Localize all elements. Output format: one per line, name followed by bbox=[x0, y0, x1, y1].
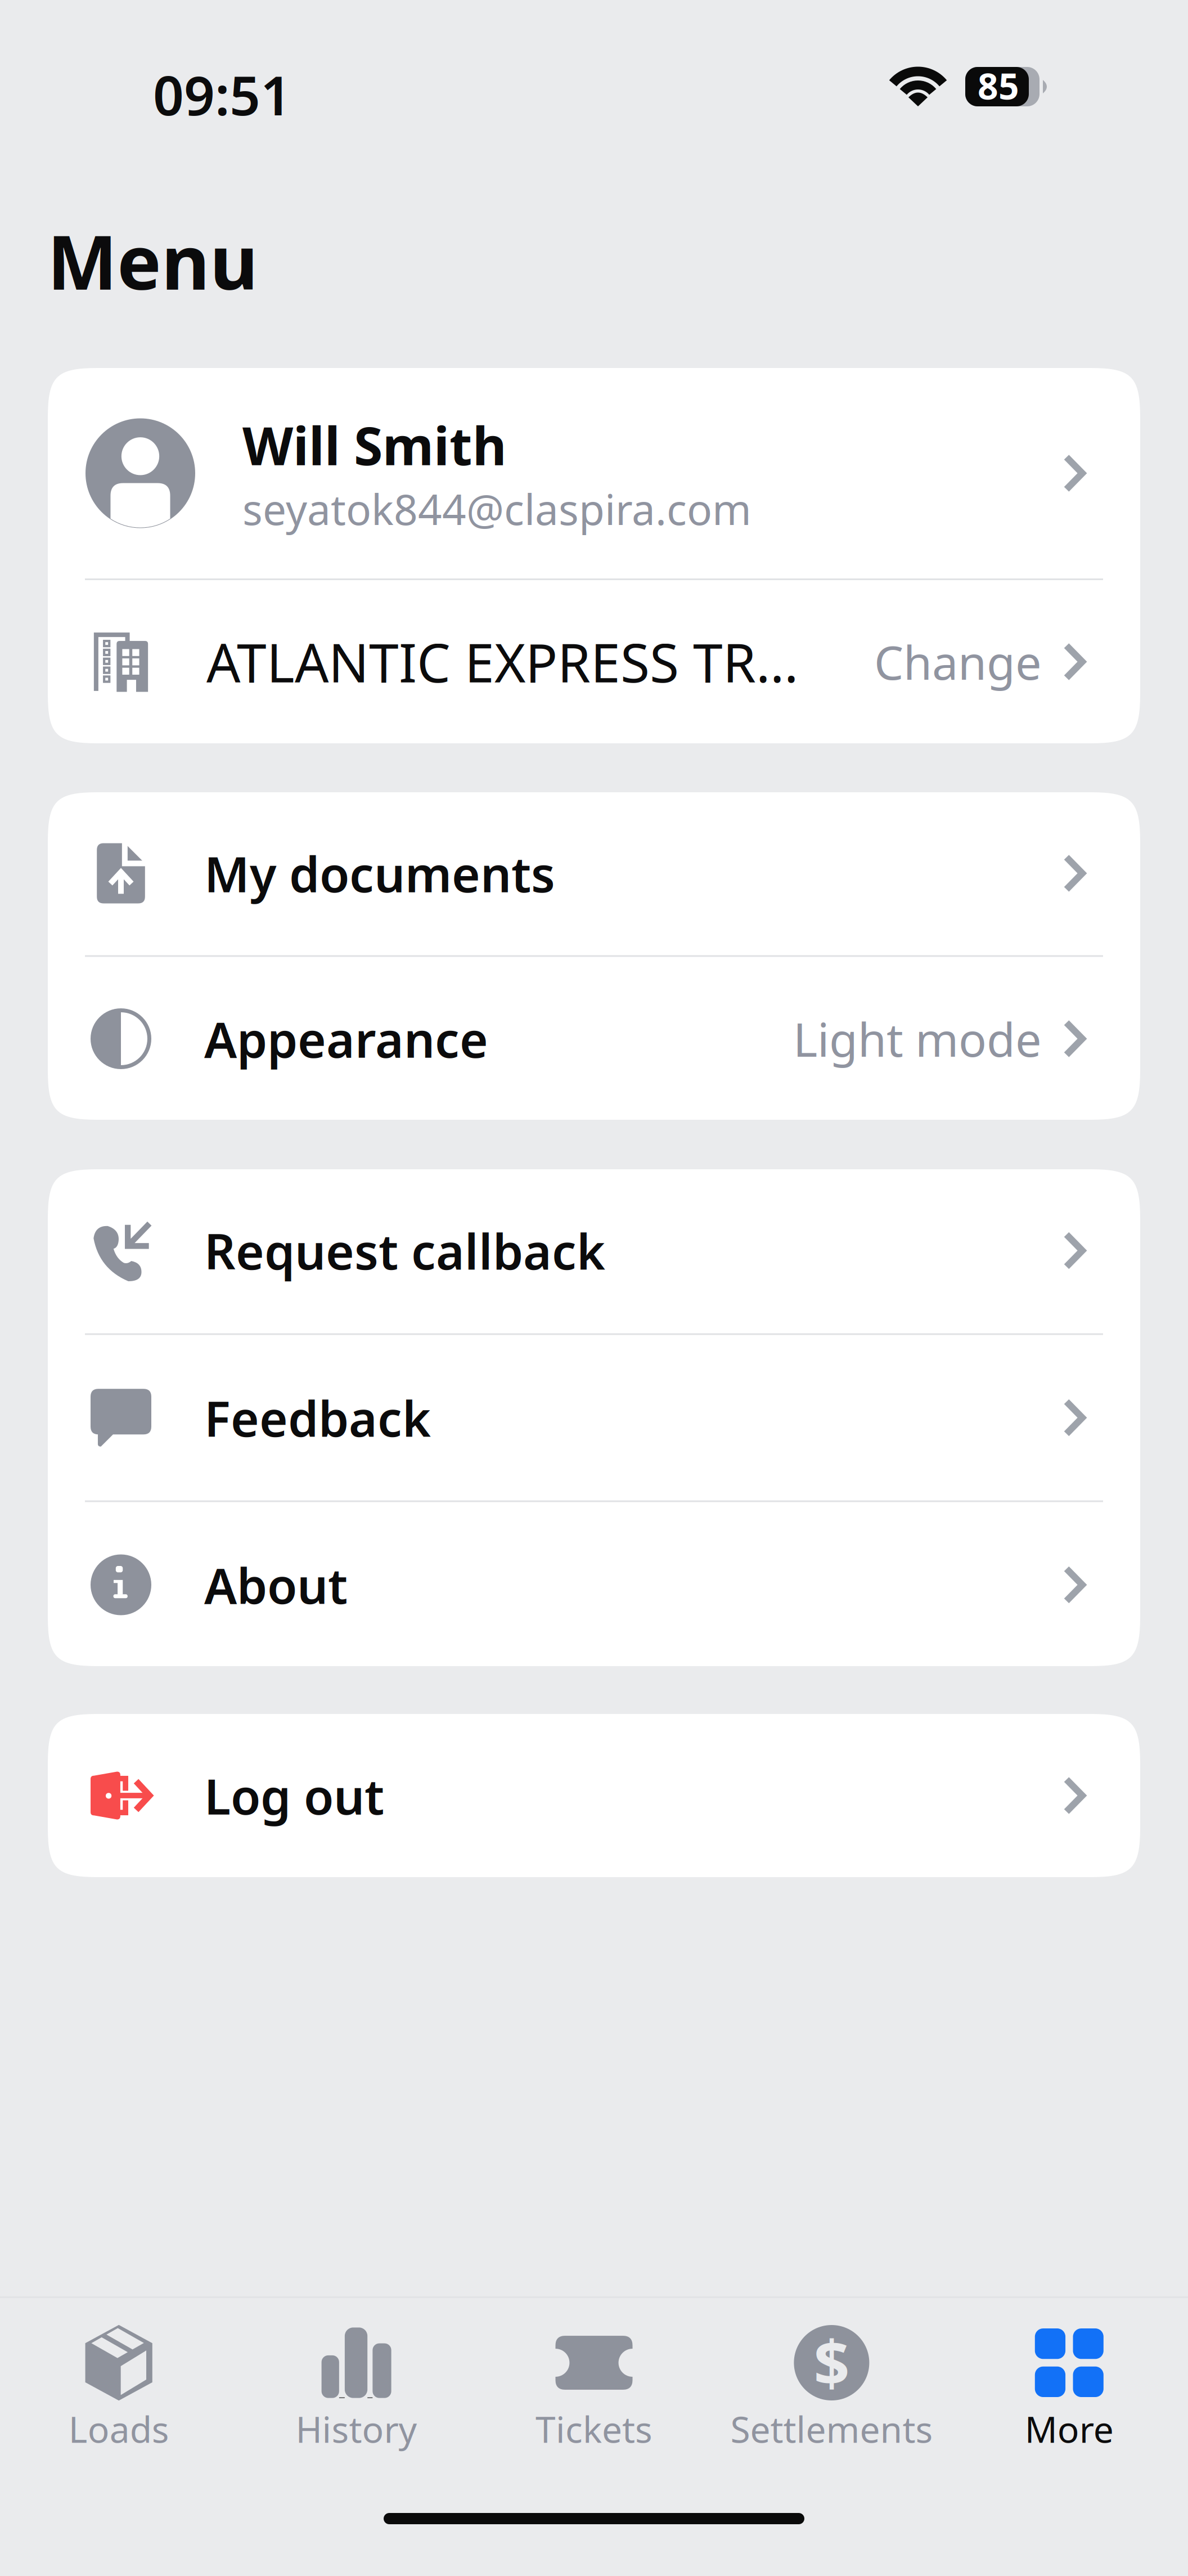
staticText: Request callback bbox=[204, 1218, 605, 1283]
staticText: Tickets bbox=[535, 2405, 652, 2453]
staticText: 85 bbox=[978, 62, 1019, 109]
staticText: 09:51 bbox=[153, 59, 291, 130]
staticText: seyatok844@claspira.com bbox=[242, 481, 751, 537]
staticText: Appearance bbox=[204, 1006, 488, 1071]
staticText: Settlements bbox=[730, 2405, 933, 2453]
staticText: More bbox=[1025, 2405, 1114, 2453]
button[interactable]: Feedback bbox=[48, 1335, 1140, 1500]
staticText: Menu bbox=[47, 212, 258, 310]
button[interactable]: More bbox=[950, 2298, 1188, 2467]
button[interactable]: ATLANTIC EXPRESS TR... bbox=[48, 580, 1140, 743]
staticText: Will Smith bbox=[242, 410, 507, 480]
button[interactable]: Tickets bbox=[475, 2298, 713, 2467]
button[interactable]: Log out bbox=[48, 1714, 1140, 1877]
staticText: ATLANTIC EXPRESS TR... bbox=[206, 626, 798, 697]
staticText: Feedback bbox=[204, 1385, 431, 1450]
staticText: About bbox=[204, 1552, 348, 1617]
button[interactable]: My documents bbox=[48, 791, 1140, 955]
staticText: Log out bbox=[204, 1763, 384, 1828]
button[interactable]: Loads bbox=[0, 2298, 238, 2467]
staticText: $ bbox=[814, 2320, 850, 2403]
staticText: History bbox=[296, 2405, 417, 2453]
button[interactable]: $ bbox=[713, 2298, 950, 2467]
button[interactable]: History bbox=[238, 2298, 475, 2467]
button[interactable]: Request callback bbox=[48, 1168, 1140, 1333]
staticText: Change bbox=[874, 631, 1042, 693]
button[interactable]: Appearance bbox=[48, 957, 1140, 1121]
staticText: Light mode bbox=[793, 1008, 1042, 1070]
staticText: Loads bbox=[68, 2405, 169, 2453]
button[interactable]: About bbox=[48, 1502, 1140, 1668]
button[interactable]: Will Smith bbox=[48, 368, 1140, 578]
staticText: My documents bbox=[204, 841, 555, 906]
